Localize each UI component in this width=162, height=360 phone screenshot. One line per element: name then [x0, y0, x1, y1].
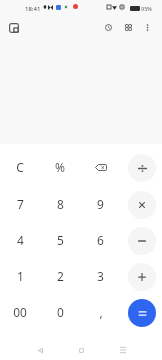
button[interactable]: Minus — [128, 227, 156, 255]
button[interactable]: 3 — [80, 259, 121, 295]
staticText: 9 — [97, 196, 104, 212]
staticText: 18:41 — [25, 5, 41, 13]
button[interactable]: 6 — [80, 223, 121, 259]
button[interactable]: , — [80, 295, 121, 331]
button[interactable]: 2 — [40, 259, 80, 295]
button[interactable]: C — [0, 149, 40, 186]
staticText: % — [55, 159, 65, 175]
button[interactable]: Backspace — [80, 149, 121, 186]
button[interactable]: History — [97, 16, 120, 39]
button[interactable]: Equals — [128, 299, 156, 327]
staticText: 0 — [57, 304, 64, 320]
staticText: 00 — [13, 304, 27, 320]
button[interactable]: Recents — [111, 338, 135, 360]
button[interactable]: 1 — [0, 259, 40, 295]
staticText: 8 — [57, 196, 64, 212]
staticText: 95% — [141, 5, 152, 12]
staticText: , — [99, 304, 103, 320]
staticText: 3 — [97, 268, 104, 284]
button[interactable]: % — [40, 149, 80, 186]
button[interactable]: 00 — [0, 295, 40, 331]
button[interactable]: 9 — [80, 186, 121, 223]
button[interactable]: Plus — [128, 263, 156, 291]
button[interactable]: Multiply — [128, 191, 156, 219]
staticText: 1 — [17, 268, 24, 284]
staticText: 4 — [17, 232, 24, 248]
button[interactable]: More options — [136, 16, 159, 39]
staticText: 5 — [57, 232, 64, 248]
button[interactable]: 5 — [40, 223, 80, 259]
button[interactable]: Converter — [117, 16, 140, 39]
button[interactable]: Divide — [128, 154, 156, 182]
button[interactable]: Calculator mode — [2, 16, 26, 40]
button[interactable]: Back — [28, 338, 52, 360]
button[interactable]: 0 — [40, 295, 80, 331]
staticText: 6 — [97, 232, 104, 248]
staticText: 7 — [17, 196, 24, 212]
staticText: C — [16, 159, 24, 175]
button[interactable]: 8 — [40, 186, 80, 223]
button[interactable]: 7 — [0, 186, 40, 223]
button[interactable]: Home — [69, 338, 93, 360]
button[interactable]: 4 — [0, 223, 40, 259]
staticText: 2 — [57, 268, 64, 284]
